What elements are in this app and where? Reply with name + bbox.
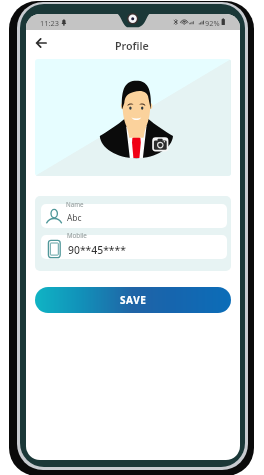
button[interactable]: Back xyxy=(31,34,49,52)
staticText: SAVE xyxy=(120,293,147,307)
staticText: Profile xyxy=(115,39,149,54)
staticText: Mobile xyxy=(67,231,87,239)
staticText: 11:23 xyxy=(40,18,59,28)
staticText: 90**45**** xyxy=(68,243,126,257)
staticText: Abc xyxy=(67,212,82,223)
staticText: Name xyxy=(66,200,84,208)
button[interactable] xyxy=(41,204,227,228)
button[interactable]: SAVE xyxy=(35,287,231,313)
staticText: 92% xyxy=(205,18,220,28)
button[interactable] xyxy=(41,235,227,259)
